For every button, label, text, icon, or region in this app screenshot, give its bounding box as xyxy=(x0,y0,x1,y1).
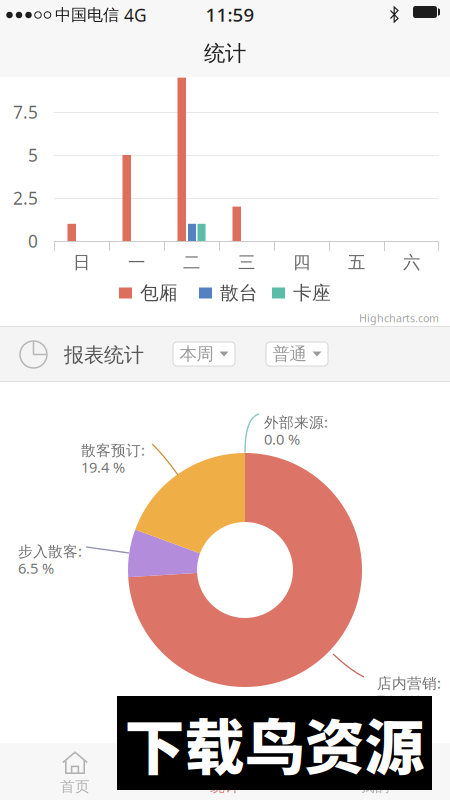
staticText: 19.4 % xyxy=(81,457,125,477)
staticText: 散客预订: xyxy=(81,440,145,460)
staticText: 四 xyxy=(293,252,310,273)
staticText: 下载鸟资源 xyxy=(124,700,424,786)
staticText: 步入散客: xyxy=(18,541,82,561)
staticText: 4G xyxy=(124,3,147,26)
staticText: 散台 xyxy=(220,281,258,304)
staticText: 74.1 % xyxy=(377,690,421,710)
staticText: 二 xyxy=(183,252,200,273)
staticText: 我的 xyxy=(360,777,390,795)
staticText: 日 xyxy=(73,252,90,273)
staticText: 包厢 xyxy=(140,281,178,304)
button[interactable]: 本周 xyxy=(173,342,235,366)
button[interactable]: 普通 xyxy=(266,342,328,366)
button[interactable]: 首页 xyxy=(0,743,150,800)
staticText: 0 xyxy=(28,229,38,252)
staticText: Highcharts.com xyxy=(359,311,439,325)
staticText: 六 xyxy=(403,252,420,273)
button[interactable]: 统计 xyxy=(150,743,300,800)
staticText: 五 xyxy=(348,252,365,273)
staticText: 0.0 % xyxy=(264,429,300,449)
staticText: 5 xyxy=(28,143,38,166)
staticText: 本周 xyxy=(179,343,213,365)
staticText: 11:59 xyxy=(205,2,254,27)
staticText: 普通 xyxy=(272,343,306,365)
staticText: 7.5 xyxy=(13,100,38,123)
staticText: 统计 xyxy=(210,777,240,795)
staticText: 2.5 xyxy=(13,186,38,209)
staticText: 卡座 xyxy=(293,281,331,304)
staticText: 三 xyxy=(238,252,255,273)
staticText: 一 xyxy=(128,252,145,273)
staticText: 6.5 % xyxy=(18,558,54,578)
staticText: 中国电信 xyxy=(55,5,119,25)
staticText: 首页 xyxy=(60,777,90,795)
staticText: 外部来源: xyxy=(264,412,328,432)
staticText: 报表统计 xyxy=(64,343,144,367)
button[interactable]: 我的 xyxy=(300,743,450,800)
staticText: 统计 xyxy=(204,40,246,67)
staticText: 店内营销: xyxy=(377,673,441,693)
